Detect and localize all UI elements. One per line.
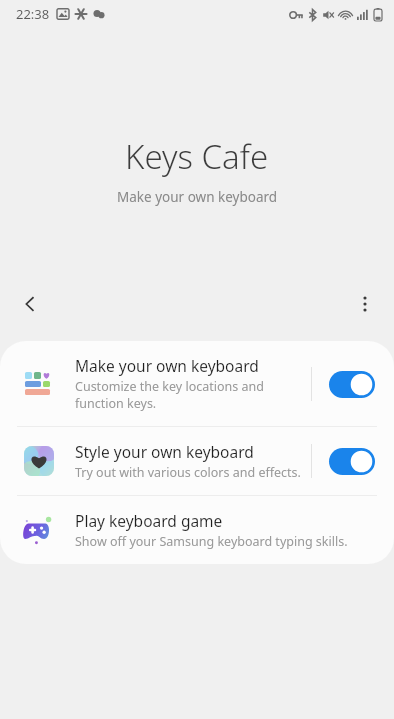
- staticText: Keys Cafe: [125, 134, 269, 179]
- staticText: Play keyboard game: [75, 510, 223, 531]
- staticText: Make your own keyboard: [117, 188, 278, 206]
- staticText: Show off your Samsung keyboard typing sk…: [75, 533, 348, 550]
- staticText: Try out with various colors and effects.: [75, 464, 301, 481]
- staticText: Style your own keyboard: [75, 441, 254, 462]
- staticText: Customize the key locations and function…: [75, 378, 301, 412]
- staticText: 22:38: [16, 5, 50, 23]
- button[interactable]: Toggle Make your own keyboard: [326, 367, 378, 401]
- button[interactable]: Make your own keyboard: [0, 341, 394, 426]
- button[interactable]: Play keyboard game: [0, 496, 394, 564]
- button[interactable]: Style your own keyboard: [0, 427, 394, 495]
- staticText: Make your own keyboard: [75, 355, 259, 376]
- button[interactable]: Back: [10, 284, 50, 324]
- button[interactable]: More options: [345, 284, 385, 324]
- button[interactable]: Toggle Style your own keyboard: [326, 444, 378, 478]
